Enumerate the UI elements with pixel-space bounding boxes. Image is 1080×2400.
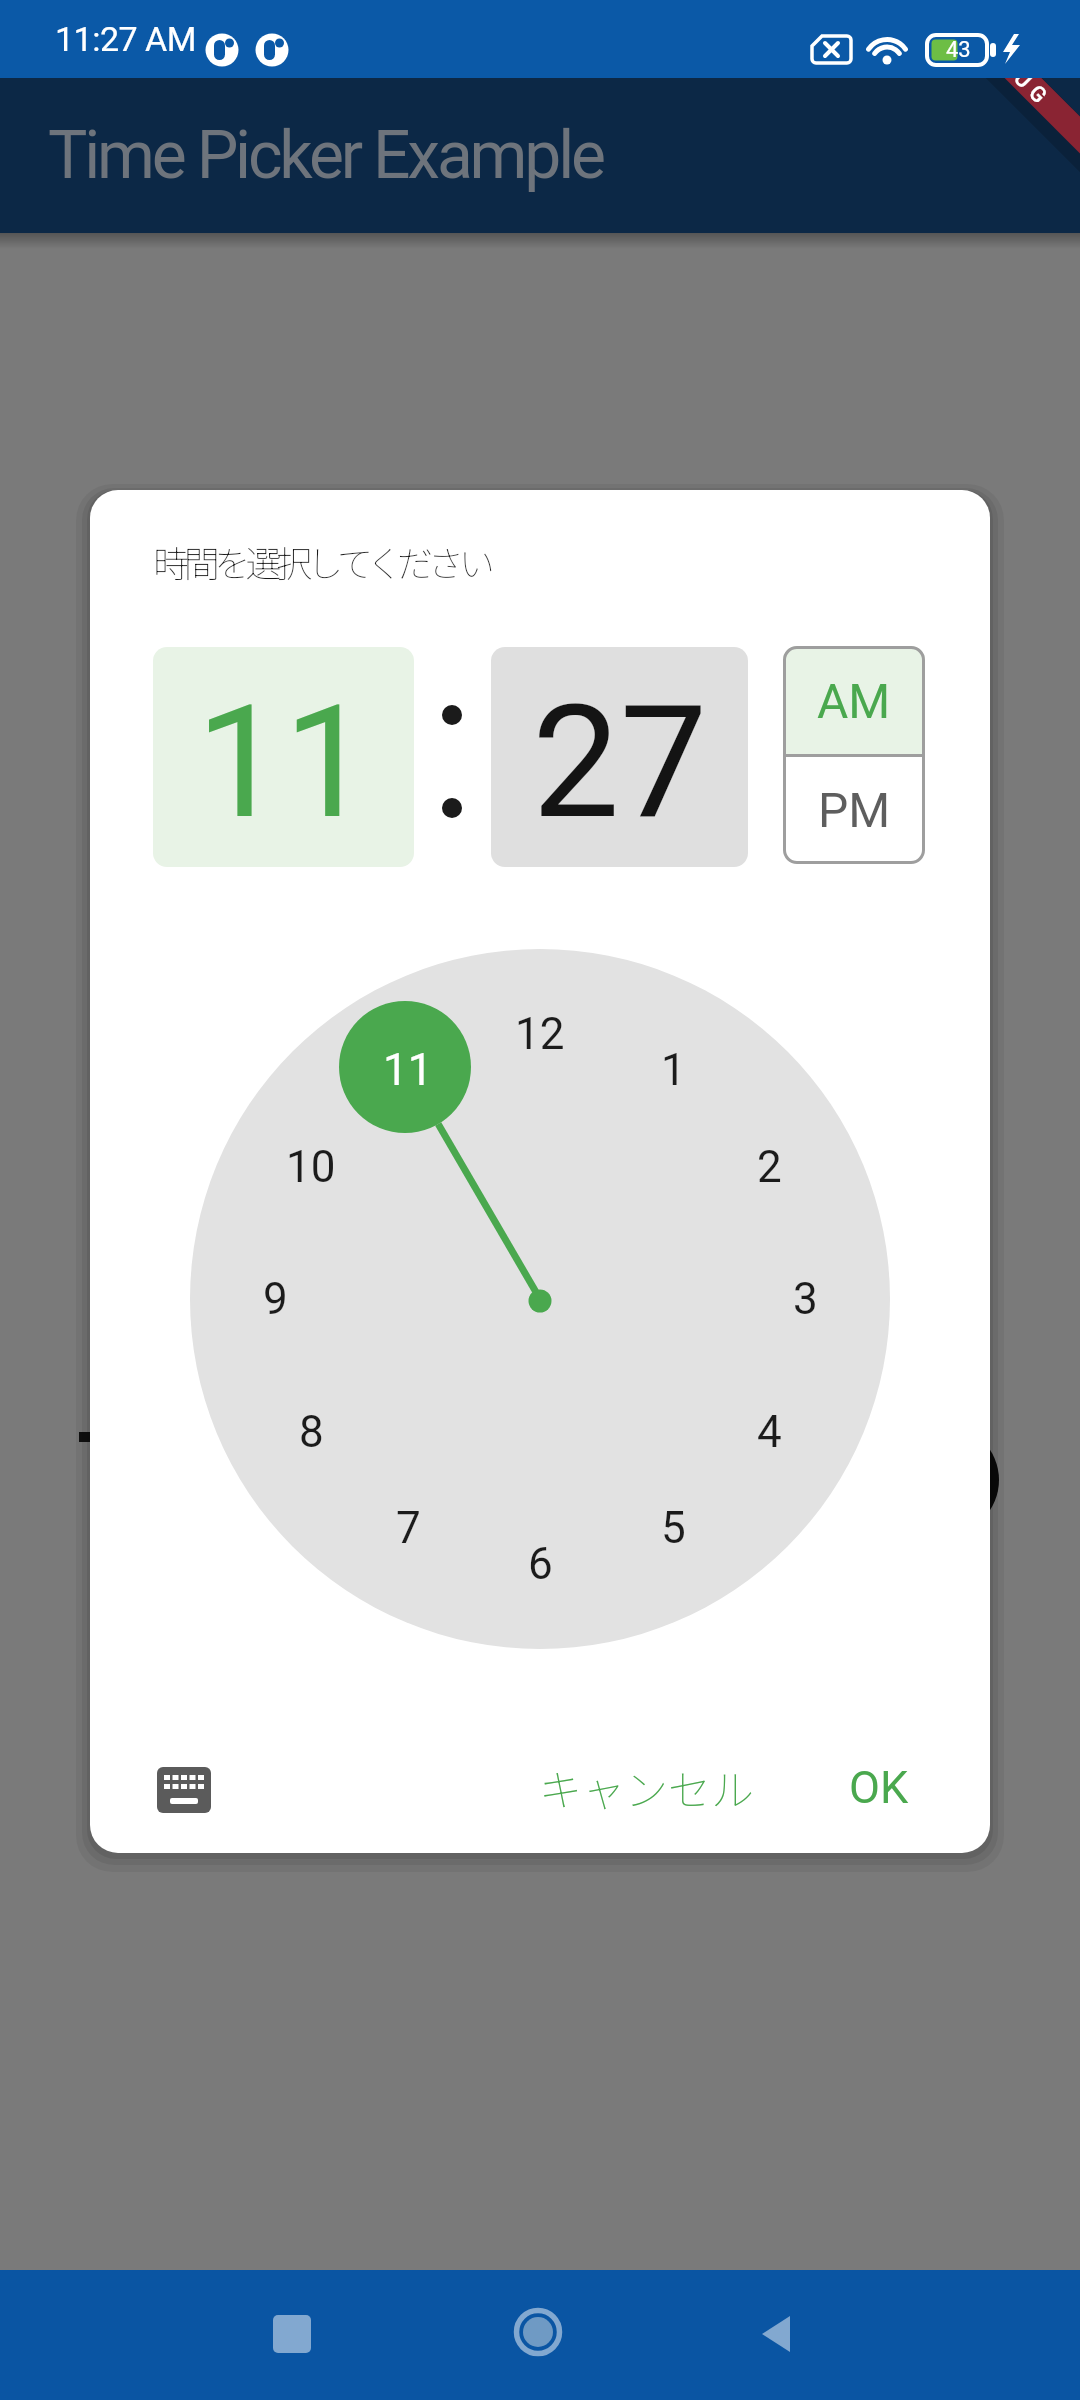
staticText: 3 xyxy=(793,1273,818,1325)
button[interactable] xyxy=(262,2304,322,2364)
button[interactable] xyxy=(157,1767,211,1813)
staticText: キャンセル xyxy=(539,1756,754,1818)
button[interactable]: 11 xyxy=(363,1042,453,1098)
button[interactable]: 27 xyxy=(491,647,748,867)
staticText: 1 xyxy=(661,1044,686,1096)
button[interactable]: キャンセル xyxy=(496,1747,796,1827)
staticText: 2 xyxy=(757,1141,782,1193)
staticText: 43 xyxy=(946,37,971,63)
staticText: 7 xyxy=(396,1502,421,1554)
staticText: 9 xyxy=(263,1273,288,1325)
button[interactable]: OK xyxy=(799,1747,959,1827)
staticText: Time Picker Example xyxy=(48,117,603,194)
staticText: UG xyxy=(1009,78,1056,113)
staticText: 27 xyxy=(532,671,708,854)
staticText: 11:27 AM xyxy=(55,19,196,59)
staticText: 6 xyxy=(528,1538,553,1590)
staticText: PM xyxy=(818,782,891,838)
button[interactable] xyxy=(748,2304,808,2364)
staticText: 4 xyxy=(757,1406,782,1458)
staticText: AM xyxy=(817,673,891,729)
button[interactable]: 11 xyxy=(153,647,414,867)
staticText: OK xyxy=(849,1761,909,1814)
staticText: 11 xyxy=(196,671,372,854)
staticText: 8 xyxy=(299,1406,324,1458)
button[interactable]: AM xyxy=(783,646,925,755)
staticText: 時間を選択してください xyxy=(153,535,490,587)
staticText: 11 xyxy=(383,1044,433,1096)
staticText: 10 xyxy=(286,1141,336,1193)
staticText: 5 xyxy=(661,1502,686,1554)
button[interactable]: PM xyxy=(783,755,925,864)
staticText: 12 xyxy=(515,1008,565,1060)
button[interactable] xyxy=(508,2302,568,2362)
